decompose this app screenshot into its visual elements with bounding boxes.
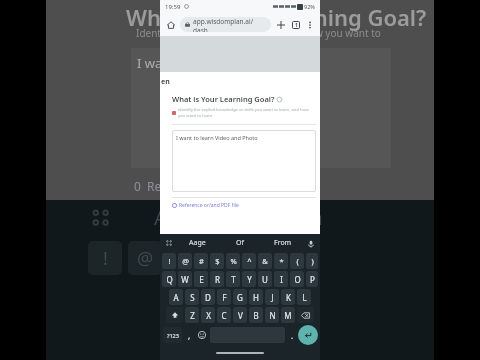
staticText: What is Your Learning Goal? bbox=[126, 2, 427, 32]
button[interactable]: # bbox=[194, 253, 208, 269]
button[interactable]: D bbox=[201, 289, 215, 305]
button[interactable]: ?123 bbox=[163, 327, 182, 343]
staticText: G bbox=[237, 292, 243, 303]
staticText: What is Your Learning Goal? bbox=[172, 94, 275, 104]
button[interactable]: Reference or/and PDF file bbox=[172, 202, 239, 209]
staticText: T bbox=[231, 274, 236, 285]
button[interactable]: ! bbox=[162, 253, 176, 269]
button[interactable]: W bbox=[178, 271, 192, 287]
button[interactable]: Home bbox=[164, 18, 178, 32]
staticText: % bbox=[230, 256, 237, 266]
button[interactable]: & bbox=[258, 253, 272, 269]
staticText: H bbox=[253, 292, 259, 303]
staticText: # bbox=[179, 246, 191, 271]
button[interactable]: V bbox=[233, 307, 247, 323]
button[interactable]: F bbox=[217, 289, 231, 305]
button[interactable]: * bbox=[274, 253, 288, 269]
button[interactable]: L bbox=[297, 289, 311, 305]
button[interactable]: ( bbox=[290, 253, 304, 269]
button[interactable]: Shift bbox=[166, 307, 183, 323]
staticText: ! bbox=[168, 256, 171, 266]
staticText: Y bbox=[247, 274, 252, 285]
staticText: Z bbox=[190, 310, 195, 321]
staticText: M bbox=[284, 310, 292, 321]
staticText: 92% bbox=[304, 3, 315, 10]
button[interactable]: G bbox=[233, 289, 247, 305]
staticText: $ bbox=[215, 256, 220, 266]
staticText: Identify the explicit knowledge and how … bbox=[136, 26, 381, 40]
button[interactable]: Period bbox=[286, 327, 298, 343]
button[interactable]: Voice input bbox=[304, 237, 317, 250]
button[interactable]: Comma bbox=[183, 327, 195, 343]
staticText: S bbox=[190, 292, 195, 303]
button[interactable]: A bbox=[169, 289, 183, 305]
staticText: ) bbox=[311, 256, 314, 266]
staticText: app.wisdomplan.ai/dash bbox=[193, 17, 266, 32]
button[interactable]: ^ bbox=[242, 253, 256, 269]
button[interactable]: Enter bbox=[298, 325, 318, 345]
button[interactable]: More options bbox=[304, 19, 316, 31]
staticText: O bbox=[294, 274, 301, 285]
button[interactable]: H bbox=[249, 289, 263, 305]
staticText: F bbox=[222, 292, 227, 303]
button[interactable]: app.wisdomplan.ai/dash bbox=[180, 17, 271, 32]
staticText: ?123 bbox=[167, 332, 179, 339]
button[interactable]: I want to learn Video and Photo bbox=[172, 130, 316, 192]
staticText: C bbox=[221, 310, 227, 321]
staticText: Aage bbox=[189, 238, 206, 248]
button[interactable]: X bbox=[201, 307, 215, 323]
staticText: @ bbox=[137, 246, 154, 271]
staticText: I want to learn Video and Photo bbox=[176, 134, 258, 141]
staticText: P bbox=[310, 274, 315, 285]
button[interactable]: C bbox=[217, 307, 231, 323]
button[interactable]: From bbox=[261, 234, 304, 252]
button[interactable]: J bbox=[265, 289, 279, 305]
button[interactable]: Toolbar bbox=[163, 237, 176, 250]
staticText: U bbox=[262, 274, 268, 285]
button[interactable]: Of bbox=[218, 234, 261, 252]
button[interactable]: B bbox=[249, 307, 263, 323]
button[interactable]: Tabs bbox=[289, 18, 303, 32]
button[interactable]: E bbox=[194, 271, 208, 287]
button[interactable]: $ bbox=[210, 253, 224, 269]
button[interactable]: Q bbox=[162, 271, 176, 287]
staticText: ^ bbox=[247, 256, 252, 266]
button[interactable]: I bbox=[274, 271, 288, 287]
button[interactable]: New tab bbox=[274, 18, 288, 32]
staticText: Of bbox=[236, 238, 244, 248]
button[interactable]: R bbox=[210, 271, 224, 287]
button[interactable]: U bbox=[258, 271, 272, 287]
button[interactable]: S bbox=[185, 289, 199, 305]
button[interactable]: @ bbox=[178, 253, 192, 269]
staticText: J bbox=[271, 292, 274, 303]
staticText: 1 bbox=[295, 22, 298, 29]
button[interactable]: Aage bbox=[176, 234, 218, 252]
button[interactable]: % bbox=[226, 253, 240, 269]
staticText: X bbox=[206, 310, 211, 321]
staticText: ! bbox=[103, 246, 108, 271]
staticText: V bbox=[238, 310, 243, 321]
button[interactable]: M bbox=[281, 307, 295, 323]
staticText: A bbox=[173, 292, 179, 303]
button[interactable]: Backspace bbox=[297, 307, 314, 323]
staticText: ( bbox=[296, 256, 299, 266]
button[interactable]: N bbox=[265, 307, 279, 323]
button[interactable]: T bbox=[226, 271, 240, 287]
button[interactable]: P bbox=[306, 271, 318, 287]
button[interactable]: Y bbox=[242, 271, 256, 287]
button[interactable]: K bbox=[281, 289, 295, 305]
staticText: Reference or/and PDF file bbox=[179, 202, 239, 209]
staticText: D bbox=[205, 292, 211, 303]
staticText: identify the explicit knowledge or skill… bbox=[178, 107, 316, 119]
button[interactable]: ) bbox=[306, 253, 318, 269]
staticText: 19:59 bbox=[165, 3, 181, 11]
button[interactable]: Emoji bbox=[195, 327, 209, 343]
staticText: Q bbox=[166, 274, 173, 285]
staticText: # bbox=[199, 256, 204, 266]
button[interactable]: O bbox=[290, 271, 304, 287]
staticText: I bbox=[280, 274, 283, 285]
staticText: Aage bbox=[154, 204, 202, 231]
staticText: N bbox=[269, 310, 276, 321]
button[interactable]: Z bbox=[185, 307, 199, 323]
